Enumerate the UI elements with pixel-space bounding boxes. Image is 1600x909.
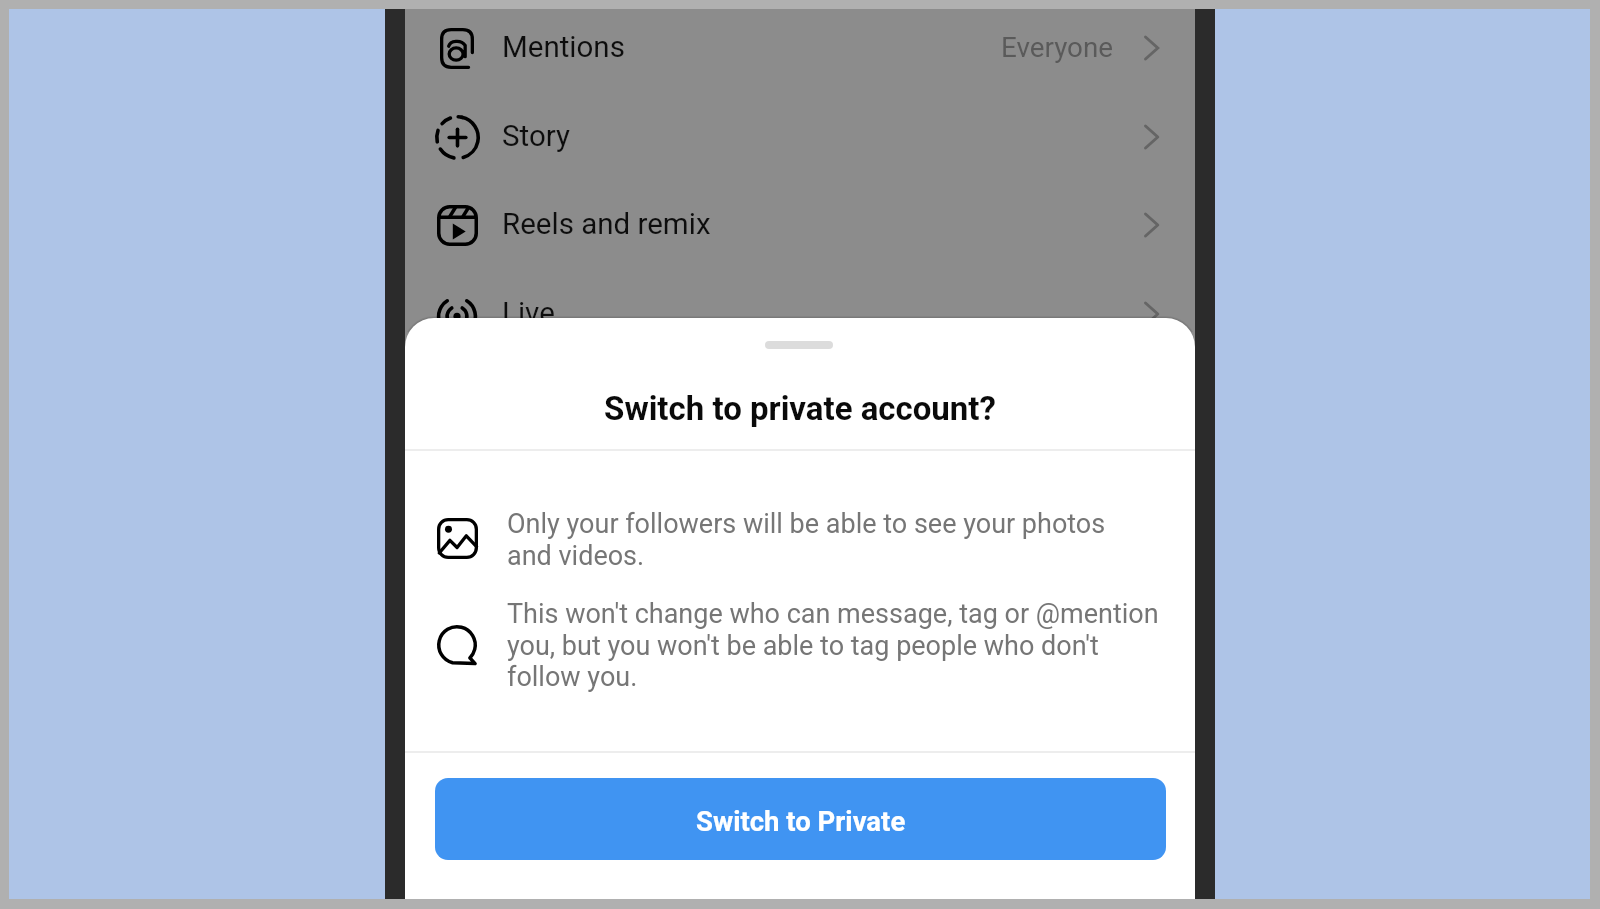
button[interactable]: Switch to Private <box>435 778 1166 860</box>
button[interactable]: Live <box>405 269 1195 358</box>
staticText: Live <box>502 296 555 331</box>
button[interactable]: Reels and remix <box>405 180 1195 269</box>
button[interactable]: Drag handle <box>751 327 847 363</box>
staticText: Mentions <box>502 30 625 65</box>
staticText: Only your followers will be able to see … <box>507 508 1106 571</box>
button[interactable]: Story <box>405 92 1195 181</box>
staticText: Switch to Private <box>696 805 906 837</box>
button[interactable]: Mentions <box>405 3 1195 92</box>
staticText: Story <box>502 119 570 154</box>
staticText: This won't change who can message, tag o… <box>507 598 1159 692</box>
button[interactable]: Dismiss dialog <box>405 9 1195 899</box>
staticText: Reels and remix <box>502 207 711 242</box>
staticText: Everyone <box>1001 31 1114 64</box>
staticText: Switch to private account? <box>405 389 1195 428</box>
